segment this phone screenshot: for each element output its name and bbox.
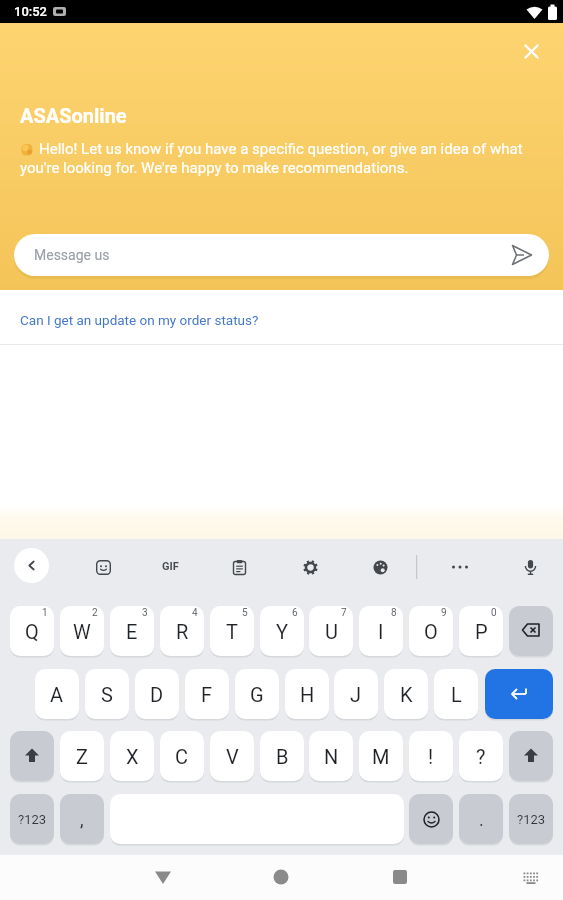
button[interactable] (88, 552, 118, 582)
staticText: ?123 (18, 812, 47, 827)
button[interactable] (445, 552, 475, 582)
staticText: O (424, 620, 438, 643)
staticText: . (479, 809, 484, 830)
staticText: Z (76, 745, 88, 768)
button[interactable]: K (384, 669, 428, 719)
button[interactable] (515, 861, 547, 893)
staticText: E (126, 620, 138, 643)
staticText: you're looking for. We're happy to make … (20, 159, 409, 177)
button[interactable]: ?123 (509, 794, 553, 844)
button[interactable]: , (60, 794, 104, 844)
staticText: Q (25, 620, 39, 643)
staticText: F (201, 683, 213, 706)
staticText: N (324, 745, 339, 768)
button[interactable] (295, 552, 325, 582)
button[interactable] (409, 794, 453, 844)
staticText: I (378, 620, 384, 643)
button[interactable]: G (235, 669, 279, 719)
staticText: S (101, 683, 113, 706)
button[interactable]: I (359, 606, 403, 656)
button[interactable] (147, 861, 179, 893)
button[interactable]: U (309, 606, 353, 656)
staticText: 3 (142, 607, 148, 619)
staticText: ? (476, 745, 486, 768)
button[interactable] (517, 37, 545, 65)
staticText: U (325, 620, 338, 643)
button[interactable]: Message us (14, 234, 549, 276)
button[interactable]: P (459, 606, 503, 656)
staticText: 8 (391, 607, 397, 619)
button[interactable]: S (85, 669, 129, 719)
staticText: G (250, 683, 264, 706)
button[interactable] (224, 552, 254, 582)
staticText: T (226, 620, 238, 643)
button[interactable]: Y (260, 606, 304, 656)
button[interactable]: GIF (155, 551, 185, 581)
button[interactable] (14, 548, 49, 583)
button[interactable]: ? (459, 731, 503, 781)
staticText: ! (428, 745, 434, 768)
staticText: ?123 (517, 812, 546, 827)
button[interactable] (384, 861, 416, 893)
button[interactable]: C (160, 731, 204, 781)
staticText: Hello! Let us know if you have a specifi… (39, 140, 523, 158)
button[interactable]: T (210, 606, 254, 656)
button[interactable]: E (110, 606, 154, 656)
button[interactable]: O (409, 606, 453, 656)
button[interactable] (509, 731, 553, 781)
button[interactable]: Can I get an update on my order status? (0, 302, 563, 338)
button[interactable]: B (260, 731, 304, 781)
staticText: Y (276, 620, 289, 643)
button[interactable] (485, 669, 553, 719)
button[interactable]: R (160, 606, 204, 656)
button[interactable]: F (185, 669, 229, 719)
staticText: K (400, 683, 413, 706)
staticText: Message us (34, 247, 110, 263)
staticText: 5 (242, 607, 248, 619)
staticText: H (300, 683, 315, 706)
staticText: 0 (491, 607, 497, 619)
button[interactable]: V (210, 731, 254, 781)
button[interactable] (509, 606, 553, 656)
staticText: C (175, 745, 189, 768)
button[interactable]: . (459, 794, 503, 844)
staticText: R (176, 620, 189, 643)
staticText: GIF (162, 560, 179, 573)
button[interactable]: N (309, 731, 353, 781)
button[interactable]: M (359, 731, 403, 781)
staticText: X (126, 745, 139, 768)
button[interactable]: ! (409, 731, 453, 781)
button[interactable]: J (334, 669, 378, 719)
staticText: 7 (341, 607, 347, 619)
staticText: V (226, 745, 239, 768)
button[interactable]: W (60, 606, 104, 656)
button[interactable] (515, 552, 545, 582)
staticText: 2 (92, 607, 98, 619)
staticText: , (80, 809, 84, 830)
staticText: 9 (441, 607, 447, 619)
button[interactable]: X (110, 731, 154, 781)
button[interactable] (265, 861, 297, 893)
button[interactable]: L (434, 669, 478, 719)
button[interactable]: Z (60, 731, 104, 781)
staticText: Can I get an update on my order status? (20, 312, 259, 328)
button[interactable]: Q (10, 606, 54, 656)
staticText: 1 (42, 607, 48, 619)
staticText: 6 (292, 607, 298, 619)
button[interactable] (365, 552, 395, 582)
staticText: A (50, 683, 64, 706)
button[interactable] (10, 731, 54, 781)
staticText: P (475, 620, 488, 643)
button[interactable]: A (35, 669, 79, 719)
button[interactable]: ?123 (10, 794, 54, 844)
staticText: 10:52 (14, 4, 48, 19)
staticText: W (73, 620, 91, 643)
staticText: L (451, 683, 462, 706)
staticText: B (276, 745, 289, 768)
button[interactable]: D (135, 669, 179, 719)
staticText: M (372, 745, 390, 768)
staticText: 4 (192, 607, 198, 619)
button[interactable]: H (285, 669, 329, 719)
staticText: J (350, 683, 362, 706)
